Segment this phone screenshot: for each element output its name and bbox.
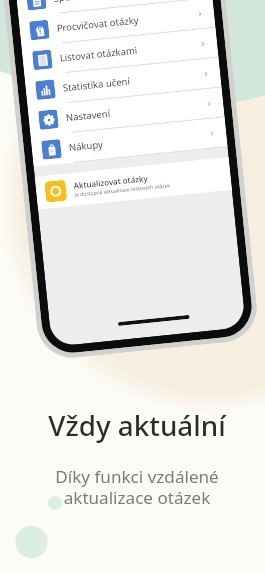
button[interactable]: Statistika učení [25, 57, 222, 107]
staticText: Listovat otázkami [59, 44, 138, 64]
button[interactable]: Spustit test [15, 0, 212, 18]
staticText: Spustit test [53, 0, 105, 5]
button[interactable]: Listovat otázkami [21, 28, 218, 77]
staticText: Nastavení [65, 107, 111, 124]
button[interactable]: Procvičovat otázky [18, 0, 215, 47]
staticText: Nákupy [68, 138, 103, 154]
staticText: Díky funkci vzdálené aktualizace otázek [55, 465, 219, 509]
staticText: Aktualizovat otázky [73, 172, 149, 191]
staticText: Vždy aktuální [48, 406, 226, 444]
staticText: Procvičovat otázky [56, 13, 140, 35]
button[interactable]: Nákupy [31, 117, 228, 167]
button[interactable]: Aktualizovat otázky [35, 157, 232, 209]
button[interactable]: Nastavení [28, 87, 225, 137]
staticText: Je dostupná aktualizace testových otázek [74, 182, 171, 199]
staticText: Statistika učení [62, 75, 131, 94]
